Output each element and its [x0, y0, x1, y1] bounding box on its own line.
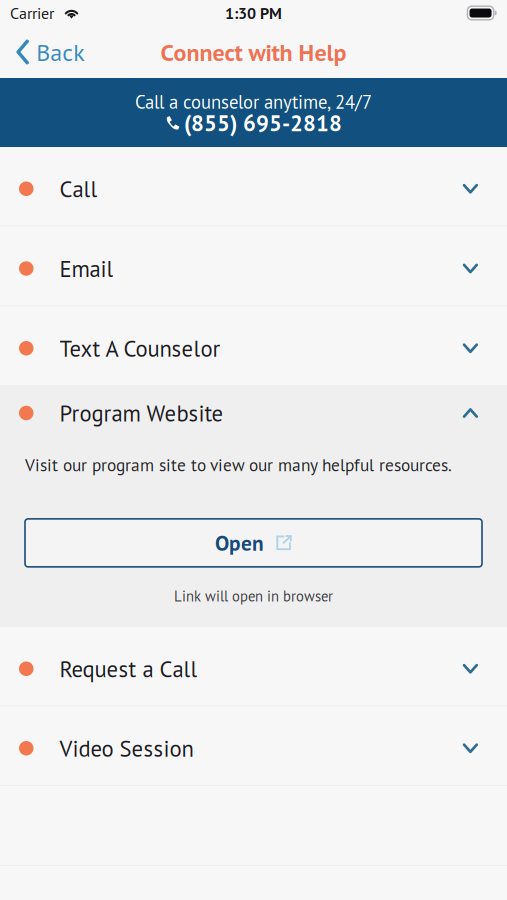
staticText: Program Website [59, 399, 223, 427]
staticText: Carrier [10, 3, 54, 23]
staticText: 1:30 PM [225, 3, 282, 23]
staticText: Email [59, 254, 113, 283]
button[interactable]: Email [0, 226, 507, 306]
staticText: Open [215, 529, 264, 556]
button[interactable]: Request a Call [0, 627, 507, 706]
button[interactable]: Text A Counselor [0, 306, 507, 386]
staticText: Link will open in browser [174, 587, 333, 605]
staticText: Text A Counselor [59, 334, 220, 363]
staticText: Video Session [59, 734, 193, 763]
button[interactable]: Video Session [0, 706, 507, 786]
staticText: (855) 695-2818 [184, 109, 342, 137]
button[interactable]: Back [0, 26, 98, 78]
staticText: Back [36, 37, 84, 67]
staticText: Visit our program site to view our many … [25, 454, 452, 476]
button[interactable]: Open [0, 519, 507, 567]
button[interactable]: Program Website [0, 386, 507, 436]
button[interactable]: Call [0, 147, 507, 226]
staticText: Call [59, 174, 97, 203]
staticText: Call a counselor anytime, 24/7 [135, 90, 372, 114]
staticText: Connect with Help [160, 37, 346, 67]
staticText: Request a Call [59, 654, 197, 683]
button[interactable]: (855) 695-2818 [165, 109, 342, 137]
